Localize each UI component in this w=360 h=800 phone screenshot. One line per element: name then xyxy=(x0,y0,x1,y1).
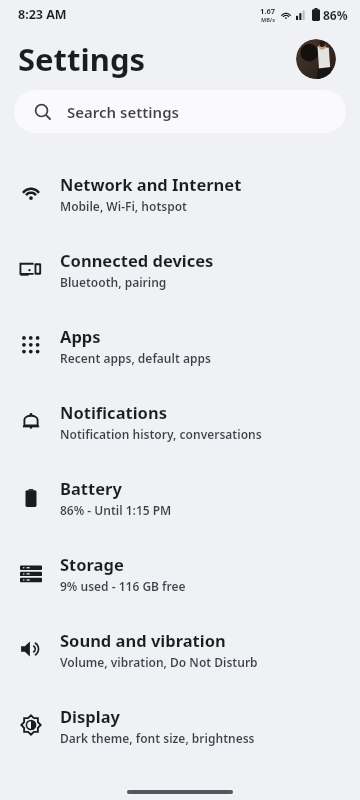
staticText: 1.67 xyxy=(260,6,275,16)
button[interactable]: Connected devices xyxy=(0,231,360,307)
staticText: 9% used - 116 GB free xyxy=(60,578,186,594)
staticText: Search settings xyxy=(67,102,179,122)
staticText: 86% - Until 1:15 PM xyxy=(60,502,172,518)
staticText: MB/s xyxy=(261,16,275,23)
staticText: Volume, vibration, Do Not Disturb xyxy=(60,654,258,670)
staticText: Notification history, conversations xyxy=(60,426,262,442)
staticText: Sound and vibration xyxy=(60,629,226,651)
staticText: Bluetooth, pairing xyxy=(60,274,167,290)
staticText: Apps xyxy=(60,325,101,347)
staticText: Storage xyxy=(60,553,124,575)
button[interactable]: Account xyxy=(296,39,336,79)
staticText: 86% xyxy=(323,7,348,23)
button[interactable]: Sound and vibration xyxy=(0,611,360,687)
button[interactable]: Storage xyxy=(0,535,360,611)
button[interactable]: Display xyxy=(0,687,360,763)
staticText: Mobile, Wi-Fi, hotspot xyxy=(60,198,187,214)
button[interactable]: Battery xyxy=(0,459,360,535)
staticText: 8:23 AM xyxy=(18,6,67,23)
button[interactable]: Network and Internet xyxy=(0,155,360,231)
button[interactable]: Search settings xyxy=(14,90,346,133)
button[interactable]: Notifications xyxy=(0,383,360,459)
button[interactable]: Apps xyxy=(0,307,360,383)
staticText: Battery xyxy=(60,477,122,499)
staticText: Settings xyxy=(18,38,146,80)
staticText: Network and Internet xyxy=(60,173,242,195)
staticText: Connected devices xyxy=(60,249,214,271)
staticText: Notifications xyxy=(60,401,167,423)
staticText: Display xyxy=(60,705,120,727)
staticText: Recent apps, default apps xyxy=(60,350,211,366)
staticText: Dark theme, font size, brightness xyxy=(60,730,255,746)
